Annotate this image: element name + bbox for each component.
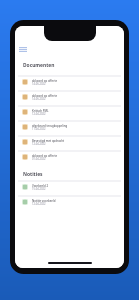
staticText: 12-04-2022 xyxy=(32,142,46,146)
staticText: 14-06-2022 xyxy=(32,97,46,101)
button[interactable]: akkoord op offerte xyxy=(18,75,121,90)
button[interactable]: akkoord op offerte xyxy=(18,150,121,165)
button[interactable]: Bevestigd met opdracht xyxy=(18,135,121,150)
staticText: 14-06-2022 xyxy=(32,82,46,86)
staticText: Kritisch PML xyxy=(32,109,49,113)
staticText: akkoord op offerte xyxy=(32,79,58,83)
staticText: Voorbeeld 2 xyxy=(32,184,49,188)
staticText: 15-04-2022 xyxy=(32,187,46,191)
staticText: Notities xyxy=(23,171,43,178)
staticText: 12-04-2022 xyxy=(32,112,46,116)
button[interactable]: Notitie voorbeeld xyxy=(18,195,121,210)
button[interactable]: Voorbeeld 2 xyxy=(18,180,121,195)
staticText: akkoord op offerte xyxy=(32,154,58,158)
staticText: 11-04-2022 xyxy=(32,127,46,131)
button[interactable]: Kritisch PML xyxy=(18,105,121,120)
staticText: Documenten xyxy=(23,62,55,69)
staticText: afgekeurd terugkoppeling xyxy=(32,124,68,128)
button[interactable]: Open navigation menu xyxy=(16,44,30,55)
staticText: Bevestigd met opdracht xyxy=(32,139,64,143)
staticText: Notitie voorbeeld xyxy=(32,199,56,203)
staticText: akkoord op offerte xyxy=(32,94,58,98)
button[interactable]: afgekeurd terugkoppeling xyxy=(18,120,121,135)
staticText: 12-04-2022 xyxy=(32,202,46,206)
staticText: 01-04-2022 xyxy=(32,157,46,161)
button[interactable]: akkoord op offerte xyxy=(18,90,121,105)
